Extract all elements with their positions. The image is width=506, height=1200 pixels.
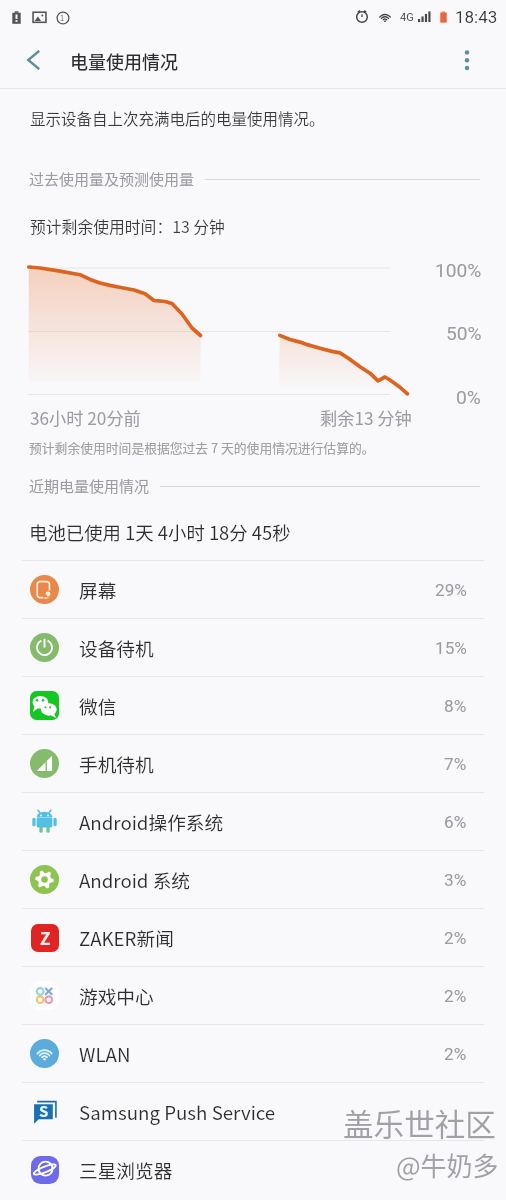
staticText: 过去使用量及预测使用量	[29, 168, 195, 190]
staticText: 微信	[79, 692, 117, 719]
staticText: 15%	[435, 638, 467, 658]
staticText: 7%	[444, 754, 467, 774]
staticText: 6%	[444, 812, 467, 832]
staticText: 4G	[400, 11, 414, 24]
staticText: 剩余13 分钟	[320, 405, 412, 430]
button[interactable]: 微信	[0, 677, 506, 734]
staticText: 36小时 20分前	[30, 405, 141, 430]
staticText: Android 系统	[79, 866, 191, 893]
button[interactable]: S	[0, 1083, 506, 1140]
staticText: 0%	[456, 386, 481, 409]
staticText: @牛奶多	[396, 1146, 499, 1184]
button[interactable]: 设备待机	[0, 619, 506, 676]
button[interactable]: Android 系统	[0, 851, 506, 908]
button[interactable]: Back	[10, 36, 58, 84]
staticText: 2%	[444, 986, 467, 1006]
staticText: 电量使用情况	[70, 48, 178, 74]
staticText: 8%	[444, 696, 467, 716]
staticText: Samsung Push Service	[79, 1098, 276, 1125]
staticText: 18:43	[455, 7, 498, 27]
staticText: 2%	[444, 1044, 467, 1064]
staticText: 2%	[444, 928, 467, 948]
staticText: 游戏中心	[79, 982, 154, 1009]
staticText: 显示设备自上次充满电后的电量使用情况。	[30, 107, 325, 129]
staticText: Z	[40, 925, 51, 950]
staticText: 屏幕	[79, 576, 117, 603]
staticText: 盖乐世社区	[343, 1101, 496, 1145]
staticText: 29%	[435, 580, 467, 600]
staticText: 100%	[435, 259, 482, 282]
staticText: 手机待机	[79, 750, 154, 777]
staticText: 预计剩余使用时间是根据您过去 7 天的使用情况进行估算的。	[29, 438, 375, 457]
button[interactable]: 游戏中心	[0, 967, 506, 1024]
button[interactable]: More options	[443, 38, 491, 86]
staticText: 3%	[444, 870, 467, 890]
button[interactable]: WLAN	[0, 1025, 506, 1082]
staticText: 三星浏览器	[79, 1156, 173, 1183]
staticText: 电池已使用 1天 4小时 18分 45秒	[29, 519, 291, 546]
staticText: 1	[60, 12, 65, 23]
button[interactable]: 三星浏览器	[0, 1141, 506, 1198]
button[interactable]: Android操作系统	[0, 793, 506, 850]
button[interactable]: Z	[0, 909, 506, 966]
staticText: 近期电量使用情况	[29, 475, 150, 497]
staticText: 50%	[446, 322, 482, 345]
staticText: WLAN	[79, 1040, 131, 1067]
staticText: 预计剩余使用时间：13 分钟	[30, 215, 225, 238]
staticText: 设备待机	[79, 634, 154, 661]
staticText: Android操作系统	[79, 808, 224, 835]
button[interactable]: 屏幕	[0, 561, 506, 618]
button[interactable]: 手机待机	[0, 735, 506, 792]
staticText: S	[39, 1100, 49, 1122]
staticText: ZAKER新闻	[79, 924, 174, 951]
